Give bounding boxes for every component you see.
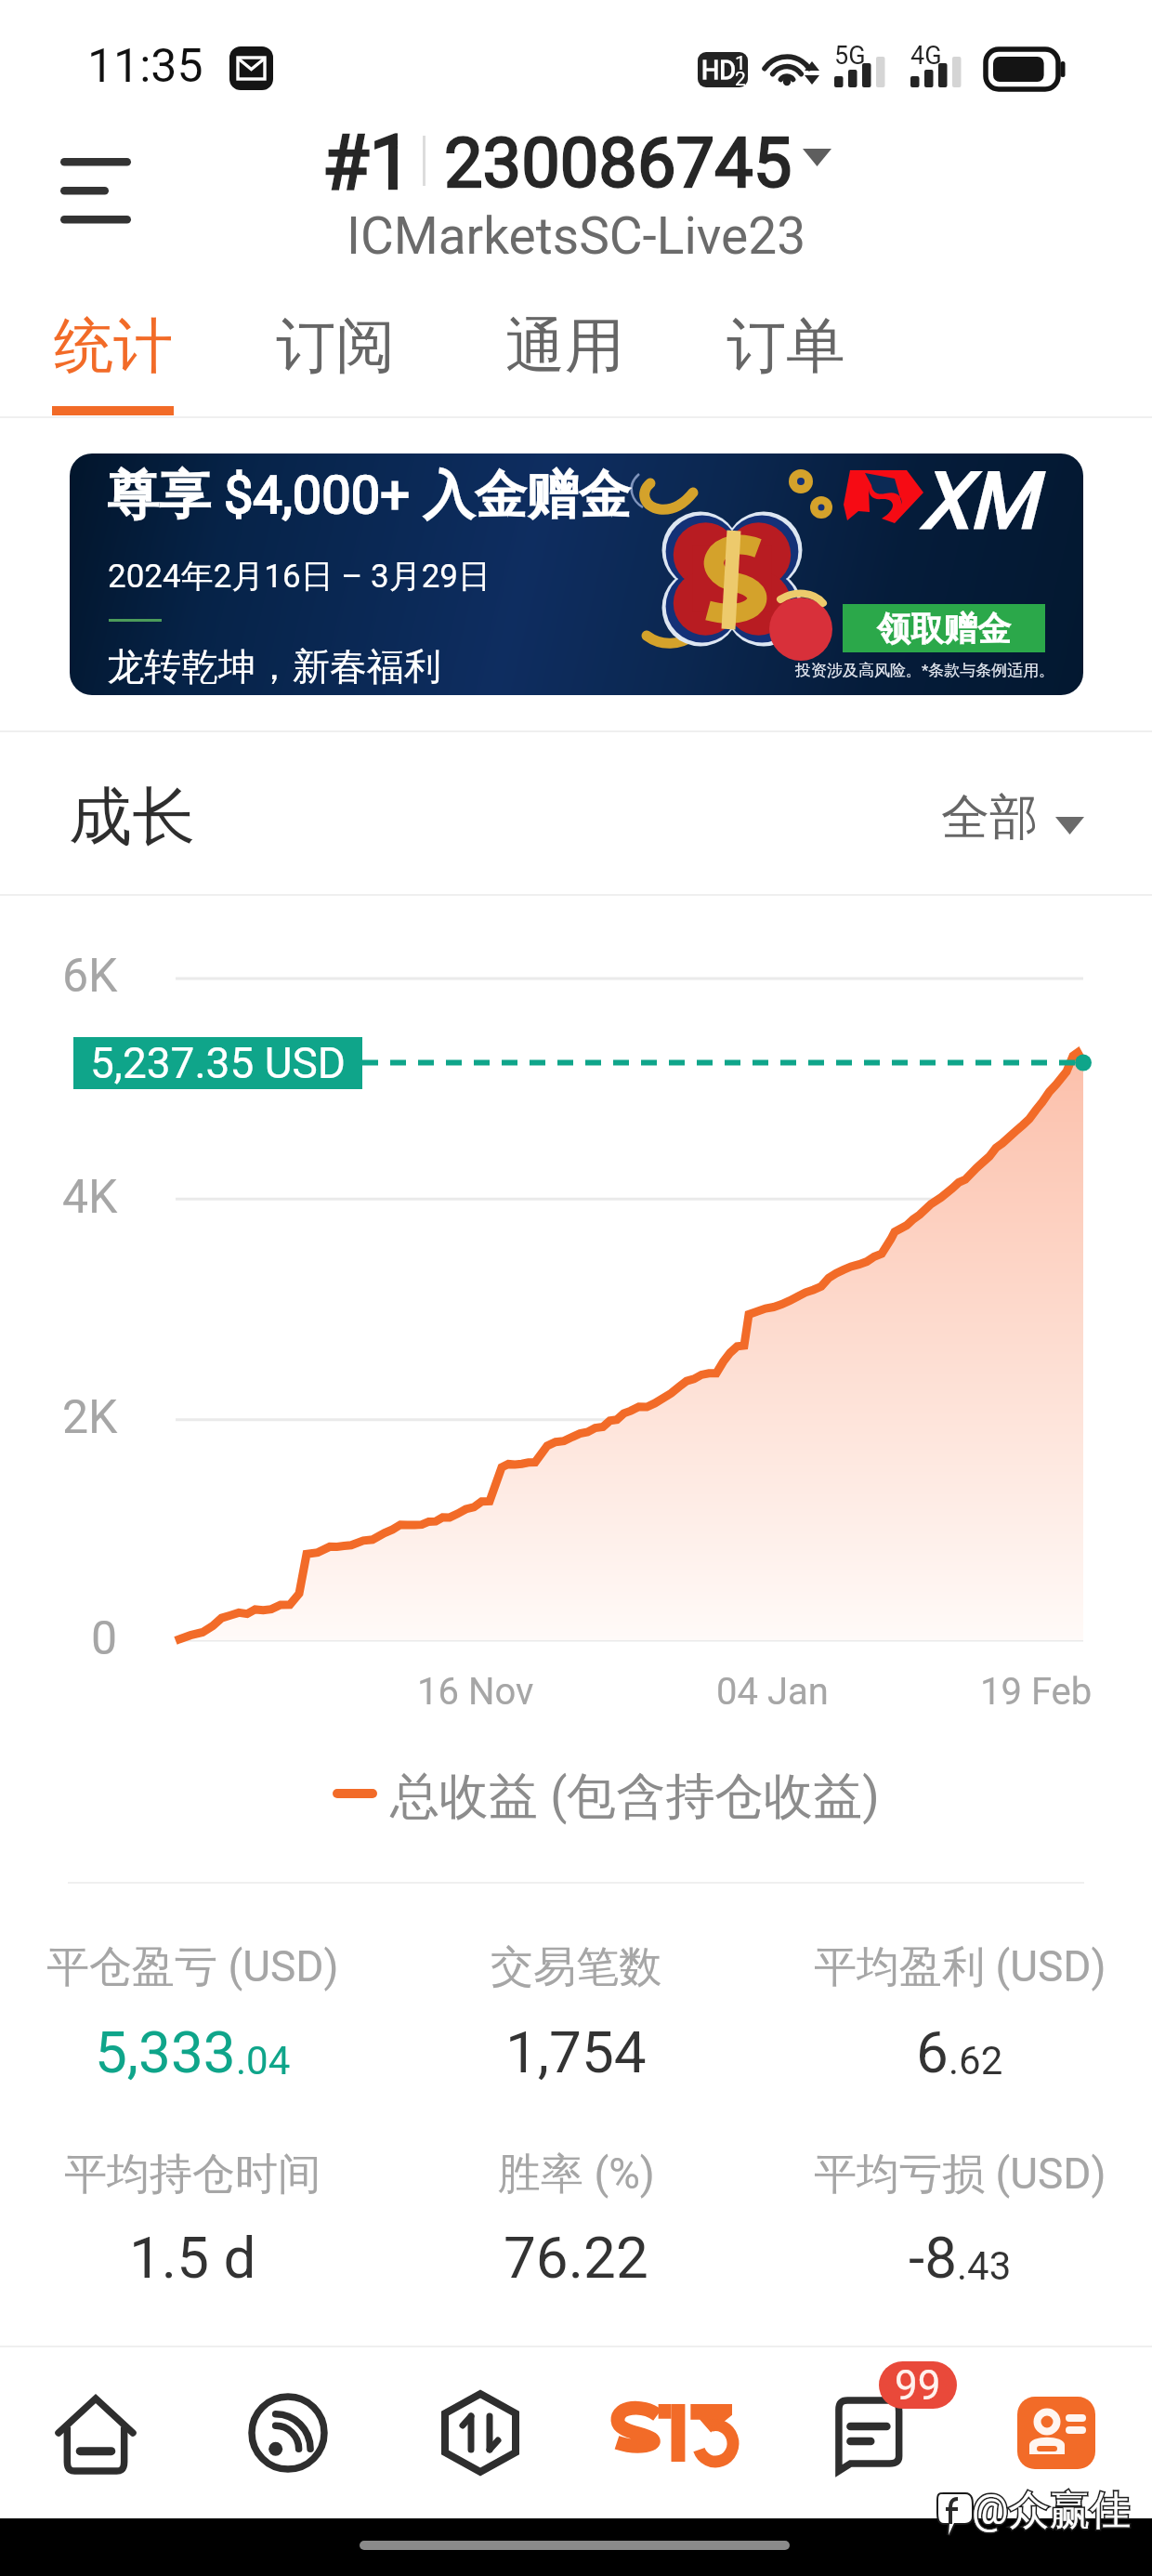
button[interactable]: 尊享 $4,000+ 入金赠金 bbox=[70, 453, 1083, 695]
staticText: 6K bbox=[62, 949, 118, 1004]
staticText: 2024年2月16日 – 3月29日 bbox=[108, 556, 491, 597]
staticText: 04 Jan bbox=[716, 1670, 829, 1714]
staticText: 总收益 (包含持仓收益) bbox=[390, 1766, 880, 1828]
button[interactable]: 订单 bbox=[708, 286, 864, 416]
staticText: 投资涉及高风险。*条款与条例适用。 bbox=[795, 661, 1055, 680]
button[interactable]: 统计 bbox=[35, 286, 191, 416]
button[interactable]: Trade bbox=[406, 2359, 555, 2507]
staticText: 通用 bbox=[505, 309, 624, 384]
staticText: HD bbox=[701, 56, 736, 85]
button[interactable]: Profile bbox=[982, 2359, 1131, 2507]
staticText: 19 Feb bbox=[980, 1670, 1093, 1714]
staticText: 统计 bbox=[54, 309, 173, 384]
staticText: 5,333 bbox=[95, 2018, 236, 2086]
staticText: 平均亏损 (USD) bbox=[814, 2148, 1106, 2201]
button[interactable]: 通用 bbox=[487, 286, 643, 416]
staticText: 6 bbox=[916, 2018, 949, 2086]
button[interactable]: #1 bbox=[307, 115, 845, 199]
staticText: 成长 bbox=[69, 778, 195, 858]
staticText: 领取赠金 bbox=[877, 608, 1011, 650]
staticText: -8 bbox=[909, 2224, 957, 2292]
staticText: 2 bbox=[735, 68, 746, 91]
button[interactable]: 订阅 bbox=[257, 286, 413, 416]
button[interactable]: 全部 bbox=[920, 771, 1096, 864]
button[interactable]: 领取赠金 bbox=[843, 604, 1045, 652]
staticText: 5G bbox=[834, 41, 866, 71]
button[interactable]: Signals bbox=[214, 2359, 362, 2507]
staticText: @众赢佳 bbox=[972, 2485, 1132, 2536]
staticText: 1,754 bbox=[505, 2018, 647, 2086]
staticText: 4K bbox=[62, 1170, 118, 1225]
staticText: @众赢佳 bbox=[972, 2485, 1132, 2536]
button[interactable]: Home bbox=[21, 2359, 170, 2507]
button[interactable]: Messages bbox=[809, 2351, 958, 2500]
staticText: #1 bbox=[322, 118, 412, 202]
staticText: .62 bbox=[949, 2038, 1003, 2083]
staticText: 2K bbox=[62, 1390, 118, 1445]
staticText: 平均盈利 (USD) bbox=[814, 1940, 1106, 1994]
button[interactable]: S13 bbox=[581, 2359, 766, 2507]
staticText: 5,237.35 USD bbox=[90, 1038, 347, 1088]
staticText: 1.5 d bbox=[129, 2224, 256, 2292]
staticText: ICMarketsSC-Live23 bbox=[0, 206, 1152, 266]
staticText: 订单 bbox=[727, 309, 845, 384]
staticText: 平均持仓时间 bbox=[64, 2148, 321, 2201]
staticText: 交易笔数 bbox=[491, 1940, 661, 1994]
staticText: 龙转乾坤，新春福利 bbox=[107, 643, 441, 690]
staticText: 订阅 bbox=[276, 309, 395, 384]
staticText: 4G bbox=[910, 41, 942, 71]
staticText: 230086745 bbox=[444, 123, 792, 204]
staticText: 平仓盈亏 (USD) bbox=[46, 1940, 339, 1994]
staticText: 76.22 bbox=[504, 2224, 648, 2292]
staticText: 尊享 $4,000+ 入金赠金 bbox=[107, 463, 631, 529]
staticText: 胜率 (%) bbox=[498, 2148, 655, 2201]
staticText: .43 bbox=[957, 2243, 1012, 2289]
staticText: 0 bbox=[91, 1611, 118, 1666]
staticText: 11:35 bbox=[87, 39, 203, 94]
staticText: .04 bbox=[236, 2038, 291, 2083]
staticText: 全部 bbox=[941, 787, 1038, 848]
staticText: XM bbox=[920, 455, 1037, 546]
button[interactable]: Menu bbox=[39, 136, 151, 247]
staticText: 1 bbox=[735, 52, 746, 75]
staticText: 16 Nov bbox=[417, 1670, 534, 1714]
staticText: 99 bbox=[895, 2361, 941, 2409]
